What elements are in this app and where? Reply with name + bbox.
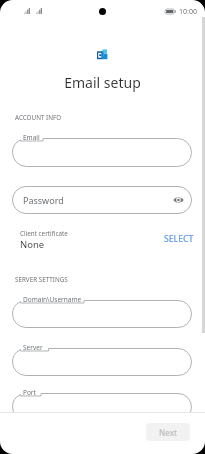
button[interactable]: SELECT xyxy=(162,228,196,250)
staticText: 10:00 xyxy=(179,7,197,17)
button[interactable]: Show password xyxy=(171,193,185,207)
button[interactable]: Next xyxy=(146,423,190,441)
button[interactable]: Password xyxy=(12,186,192,214)
button[interactable]: Server xyxy=(12,348,192,376)
staticText: Port xyxy=(23,388,36,397)
button[interactable]: Port xyxy=(12,393,192,421)
button[interactable]: Email xyxy=(12,138,192,167)
staticText: ACCOUNT INFO xyxy=(15,113,62,122)
staticText: Password xyxy=(23,194,64,206)
staticText: Email setup xyxy=(0,73,205,92)
staticText: Email xyxy=(23,133,40,142)
staticText: Client certificate xyxy=(20,229,68,238)
staticText: Domain\Username xyxy=(23,295,82,304)
staticText: Server xyxy=(23,343,43,352)
staticText: SELECT xyxy=(164,233,194,245)
staticText: None xyxy=(20,238,45,251)
button[interactable]: Client certificate xyxy=(0,228,205,252)
button[interactable]: Domain\Username xyxy=(12,300,192,328)
staticText: SERVER SETTINGS xyxy=(15,275,68,284)
staticText: Next xyxy=(159,427,178,438)
